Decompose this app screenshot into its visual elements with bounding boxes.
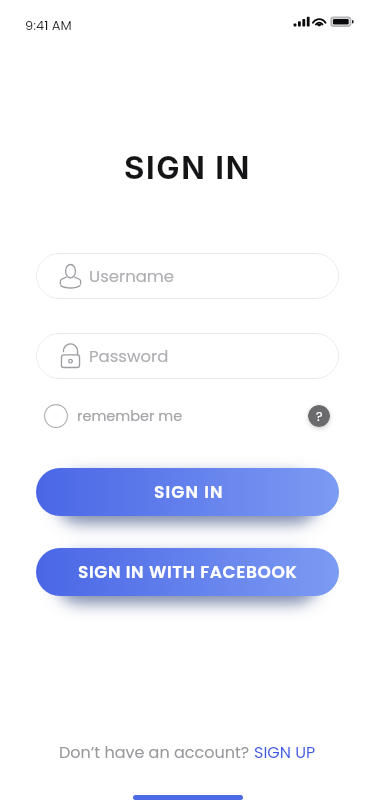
- staticText: remember me: [77, 406, 183, 426]
- button[interactable]: SIGN IN WITH FACEBOOK: [36, 548, 339, 596]
- staticText: SIGN IN: [154, 480, 224, 504]
- button[interactable]: Username: [36, 253, 339, 299]
- button[interactable]: remember me: [44, 404, 191, 428]
- staticText: SIGN IN WITH FACEBOOK: [78, 560, 298, 584]
- staticText: 9:41 AM: [25, 16, 72, 34]
- button[interactable]: SIGN UP: [254, 741, 316, 763]
- staticText: Password: [89, 345, 169, 368]
- staticText: ?: [316, 408, 323, 425]
- staticText: SIGN IN: [0, 149, 375, 187]
- button[interactable]: Help: [308, 405, 330, 427]
- button[interactable]: SIGN IN: [36, 468, 339, 516]
- staticText: SIGN UP: [254, 741, 316, 763]
- staticText: Username: [89, 265, 175, 288]
- button[interactable]: Password: [36, 333, 339, 379]
- staticText: Don’t have an account?: [59, 741, 254, 763]
